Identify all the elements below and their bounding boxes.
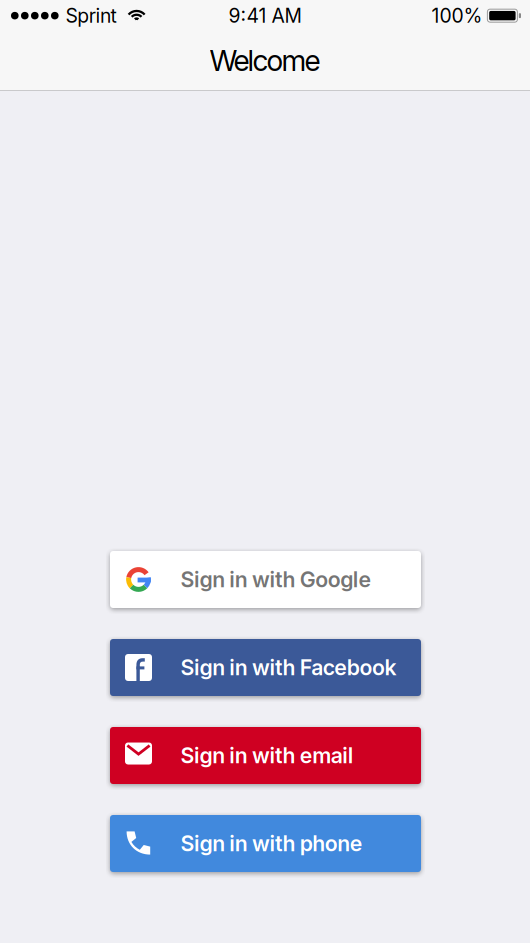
staticText: Welcome [209, 43, 320, 78]
staticText: 9:41 AM [228, 4, 301, 27]
button[interactable]: Sign in with Facebook [110, 639, 421, 696]
staticText: Sign in with phone [180, 831, 363, 856]
staticText: Sign in with Google [180, 567, 371, 592]
staticText: Sign in with email [180, 743, 354, 768]
staticText: Sign in with Facebook [180, 655, 396, 680]
button[interactable]: Sign in with email [110, 727, 421, 784]
button[interactable]: Sign in with Google [110, 551, 421, 608]
staticText: 100% [431, 4, 482, 27]
staticText: Sprint [66, 4, 117, 27]
button[interactable]: Sign in with phone [110, 815, 421, 872]
